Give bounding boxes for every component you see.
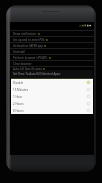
staticText: 15 Minutes xyxy=(13,88,29,92)
button[interactable]: Show notification xyxy=(10,30,94,36)
staticText: 8 Hours xyxy=(13,109,24,113)
staticText: Clear browser xyxy=(13,62,32,66)
button[interactable]: Get back to SAFER app xyxy=(10,42,94,48)
staticText: Set up and re-enter PIN xyxy=(13,38,45,42)
other: Enabled xyxy=(49,57,51,59)
staticText: Get back to SAFER app xyxy=(13,44,43,48)
button[interactable]: 8 Hours xyxy=(11,107,93,114)
button[interactable]: 2 Hours xyxy=(11,100,93,107)
button[interactable]: Auto-kill Specific apps xyxy=(10,66,94,70)
button[interactable]: Uninstall xyxy=(10,48,94,54)
button[interactable]: Clear browser xyxy=(10,60,94,66)
button[interactable]: Set up and re-enter PIN xyxy=(10,36,94,42)
staticText: Perform browser UPDATE xyxy=(13,56,48,60)
other: Enabled xyxy=(38,33,40,35)
staticText: 1 Hour xyxy=(13,95,23,99)
button[interactable]: Disable xyxy=(11,79,93,86)
staticText: Auto-kill Specific apps xyxy=(13,67,42,70)
button[interactable]: 15 Minutes xyxy=(11,86,93,93)
staticText: Set Time To Auto Kill Selected Apps xyxy=(13,72,61,76)
staticText: Disable xyxy=(13,81,24,85)
other: Enabled xyxy=(44,45,46,47)
other: Enabled xyxy=(46,39,48,41)
staticText: 2 Hours xyxy=(13,102,24,106)
staticText: Uninstall xyxy=(13,50,25,54)
button[interactable]: 1 Hour xyxy=(11,93,93,100)
button[interactable]: Perform browser UPDATE xyxy=(10,54,94,60)
other: Enabled xyxy=(43,68,45,70)
staticText: Show notification xyxy=(13,32,37,36)
